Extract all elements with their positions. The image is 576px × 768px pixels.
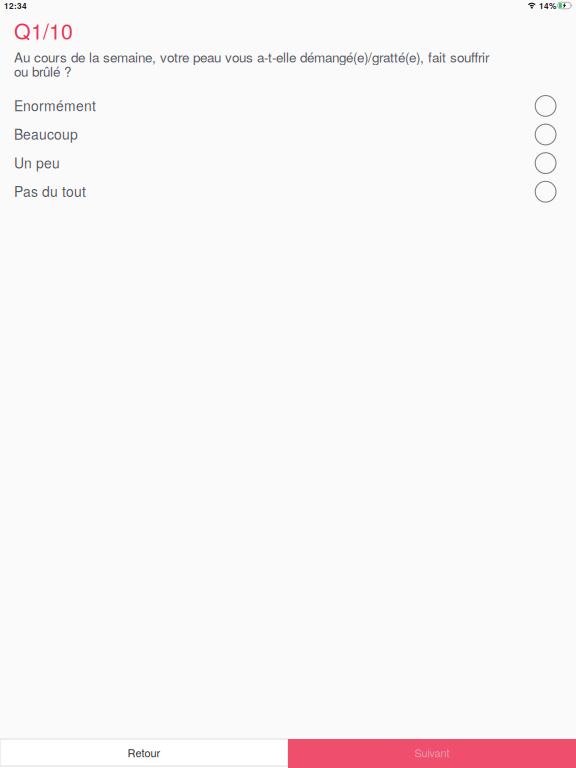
staticText: Retour [127, 745, 160, 760]
staticText: Suivant [414, 745, 449, 760]
staticText: 14% [539, 0, 556, 11]
button[interactable]: Enormément [0, 91, 576, 119]
button[interactable]: Pas du tout [0, 177, 576, 205]
button[interactable]: Suivant [288, 739, 576, 768]
button[interactable]: Retour [0, 739, 288, 768]
button[interactable]: Beaucoup [0, 119, 576, 148]
button[interactable]: Un peu [0, 148, 576, 177]
staticText: Beaucoup [14, 124, 78, 144]
staticText: Q1/10 [14, 15, 73, 45]
staticText: Un peu [14, 152, 60, 172]
staticText: 12:34 [4, 0, 27, 11]
staticText: Au cours de la semaine, votre peau vous … [14, 47, 489, 80]
staticText: Pas du tout [14, 181, 86, 201]
staticText: Enormément [14, 95, 96, 115]
